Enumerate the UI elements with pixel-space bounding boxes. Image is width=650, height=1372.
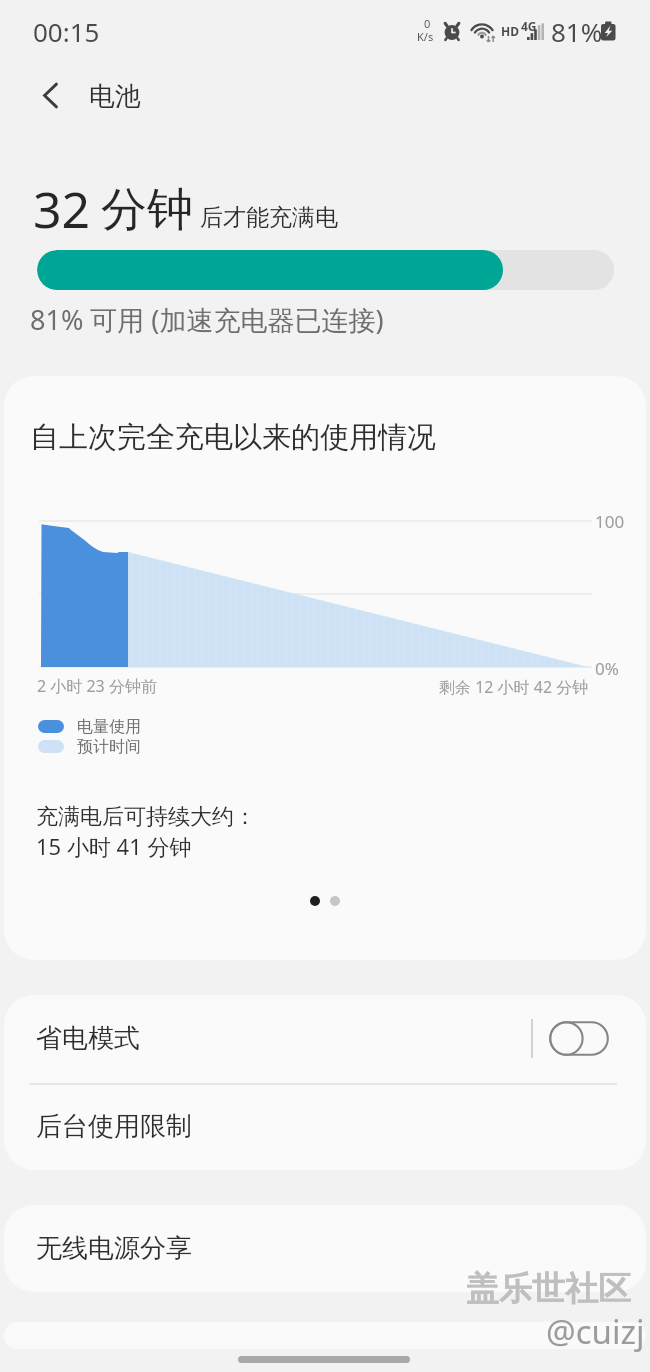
staticText: 81% — [551, 14, 603, 49]
staticText: HD — [501, 23, 519, 39]
button[interactable]: 省电模式 — [4, 995, 646, 1082]
button[interactable]: Page 1 — [305, 891, 325, 911]
staticText: 2 小时 23 分钟前 — [37, 675, 157, 697]
staticText: 无线电源分享 — [36, 1232, 192, 1265]
staticText: 0 — [424, 16, 431, 31]
staticText: 电量使用 — [77, 717, 141, 737]
staticText: 4G — [521, 18, 537, 34]
staticText: 预计时间 — [77, 737, 141, 757]
staticText: 后才能充满电 — [200, 203, 338, 232]
staticText: 00:15 — [33, 14, 100, 49]
button[interactable]: 无线电源分享 — [4, 1205, 646, 1292]
button[interactable]: Back — [23, 68, 77, 122]
staticText: 81% 可用 (加速充电器已连接) — [30, 301, 384, 338]
button[interactable]: 省电模式 toggle — [549, 1021, 609, 1056]
staticText: 分钟 — [101, 181, 193, 239]
staticText: @cuizj — [546, 1309, 645, 1354]
staticText: 0% — [595, 657, 619, 680]
button[interactable]: Page 2 — [325, 891, 345, 911]
staticText: 省电模式 — [36, 1022, 140, 1055]
staticText: 电池 — [89, 80, 141, 113]
staticText: 100 — [595, 510, 625, 533]
staticText: 后台使用限制 — [36, 1110, 192, 1143]
button[interactable] — [4, 1322, 646, 1349]
staticText: 剩余 12 小时 42 分钟 — [439, 676, 589, 698]
staticText: 盖乐世社区 — [466, 1268, 631, 1310]
staticText: 15 小时 41 分钟 — [36, 831, 192, 861]
staticText: K/s — [417, 29, 434, 44]
staticText: 自上次完全充电以来的使用情况 — [30, 419, 436, 456]
staticText: 充满电后可持续大约： — [36, 803, 256, 831]
button[interactable]: 后台使用限制 — [4, 1083, 646, 1170]
staticText: 32 — [33, 175, 91, 243]
